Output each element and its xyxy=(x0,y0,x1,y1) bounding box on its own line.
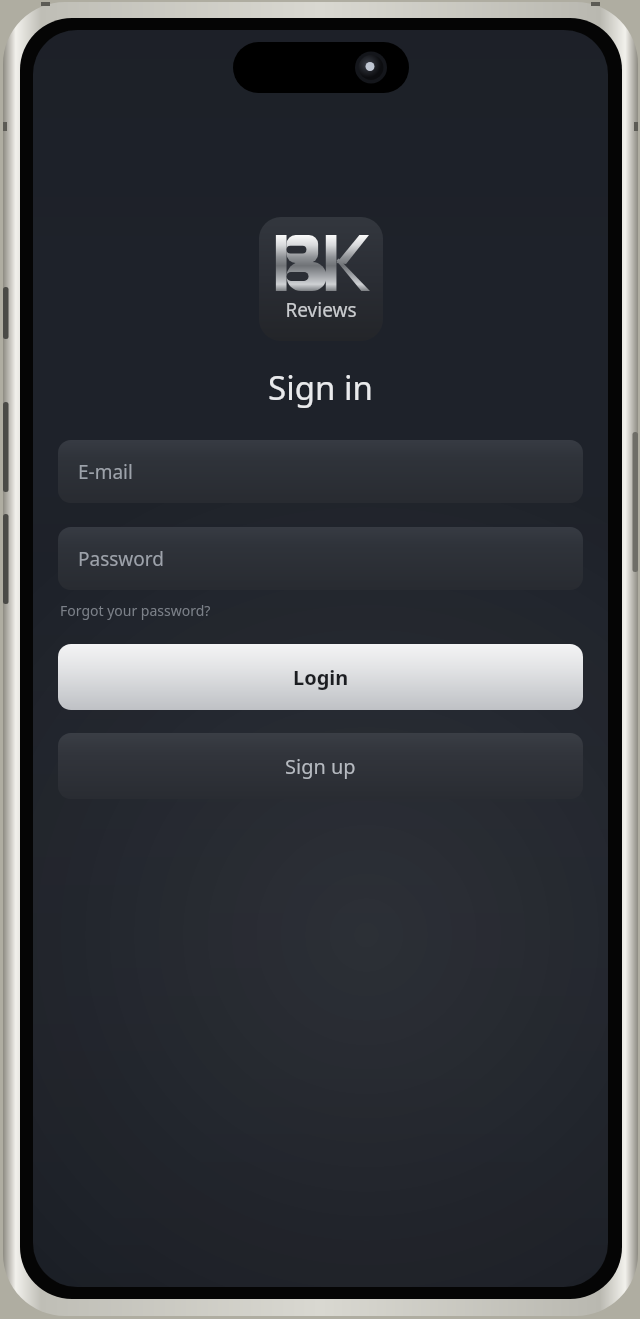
button[interactable]: E-mail xyxy=(58,440,583,503)
staticText: Forgot your password? xyxy=(60,601,211,620)
button[interactable]: BK Reviews logo xyxy=(259,217,383,341)
staticText: Reviews xyxy=(285,297,357,323)
staticText: E-mail xyxy=(78,459,133,485)
button[interactable]: Password xyxy=(58,527,583,590)
staticText: Sign up xyxy=(285,753,356,780)
staticText: Login xyxy=(293,664,349,691)
staticText: Sign in xyxy=(268,365,373,410)
staticText: Password xyxy=(78,546,164,572)
button[interactable]: Login xyxy=(58,644,583,710)
button[interactable]: Forgot your password? xyxy=(58,597,213,624)
button[interactable]: Sign up xyxy=(58,733,583,799)
